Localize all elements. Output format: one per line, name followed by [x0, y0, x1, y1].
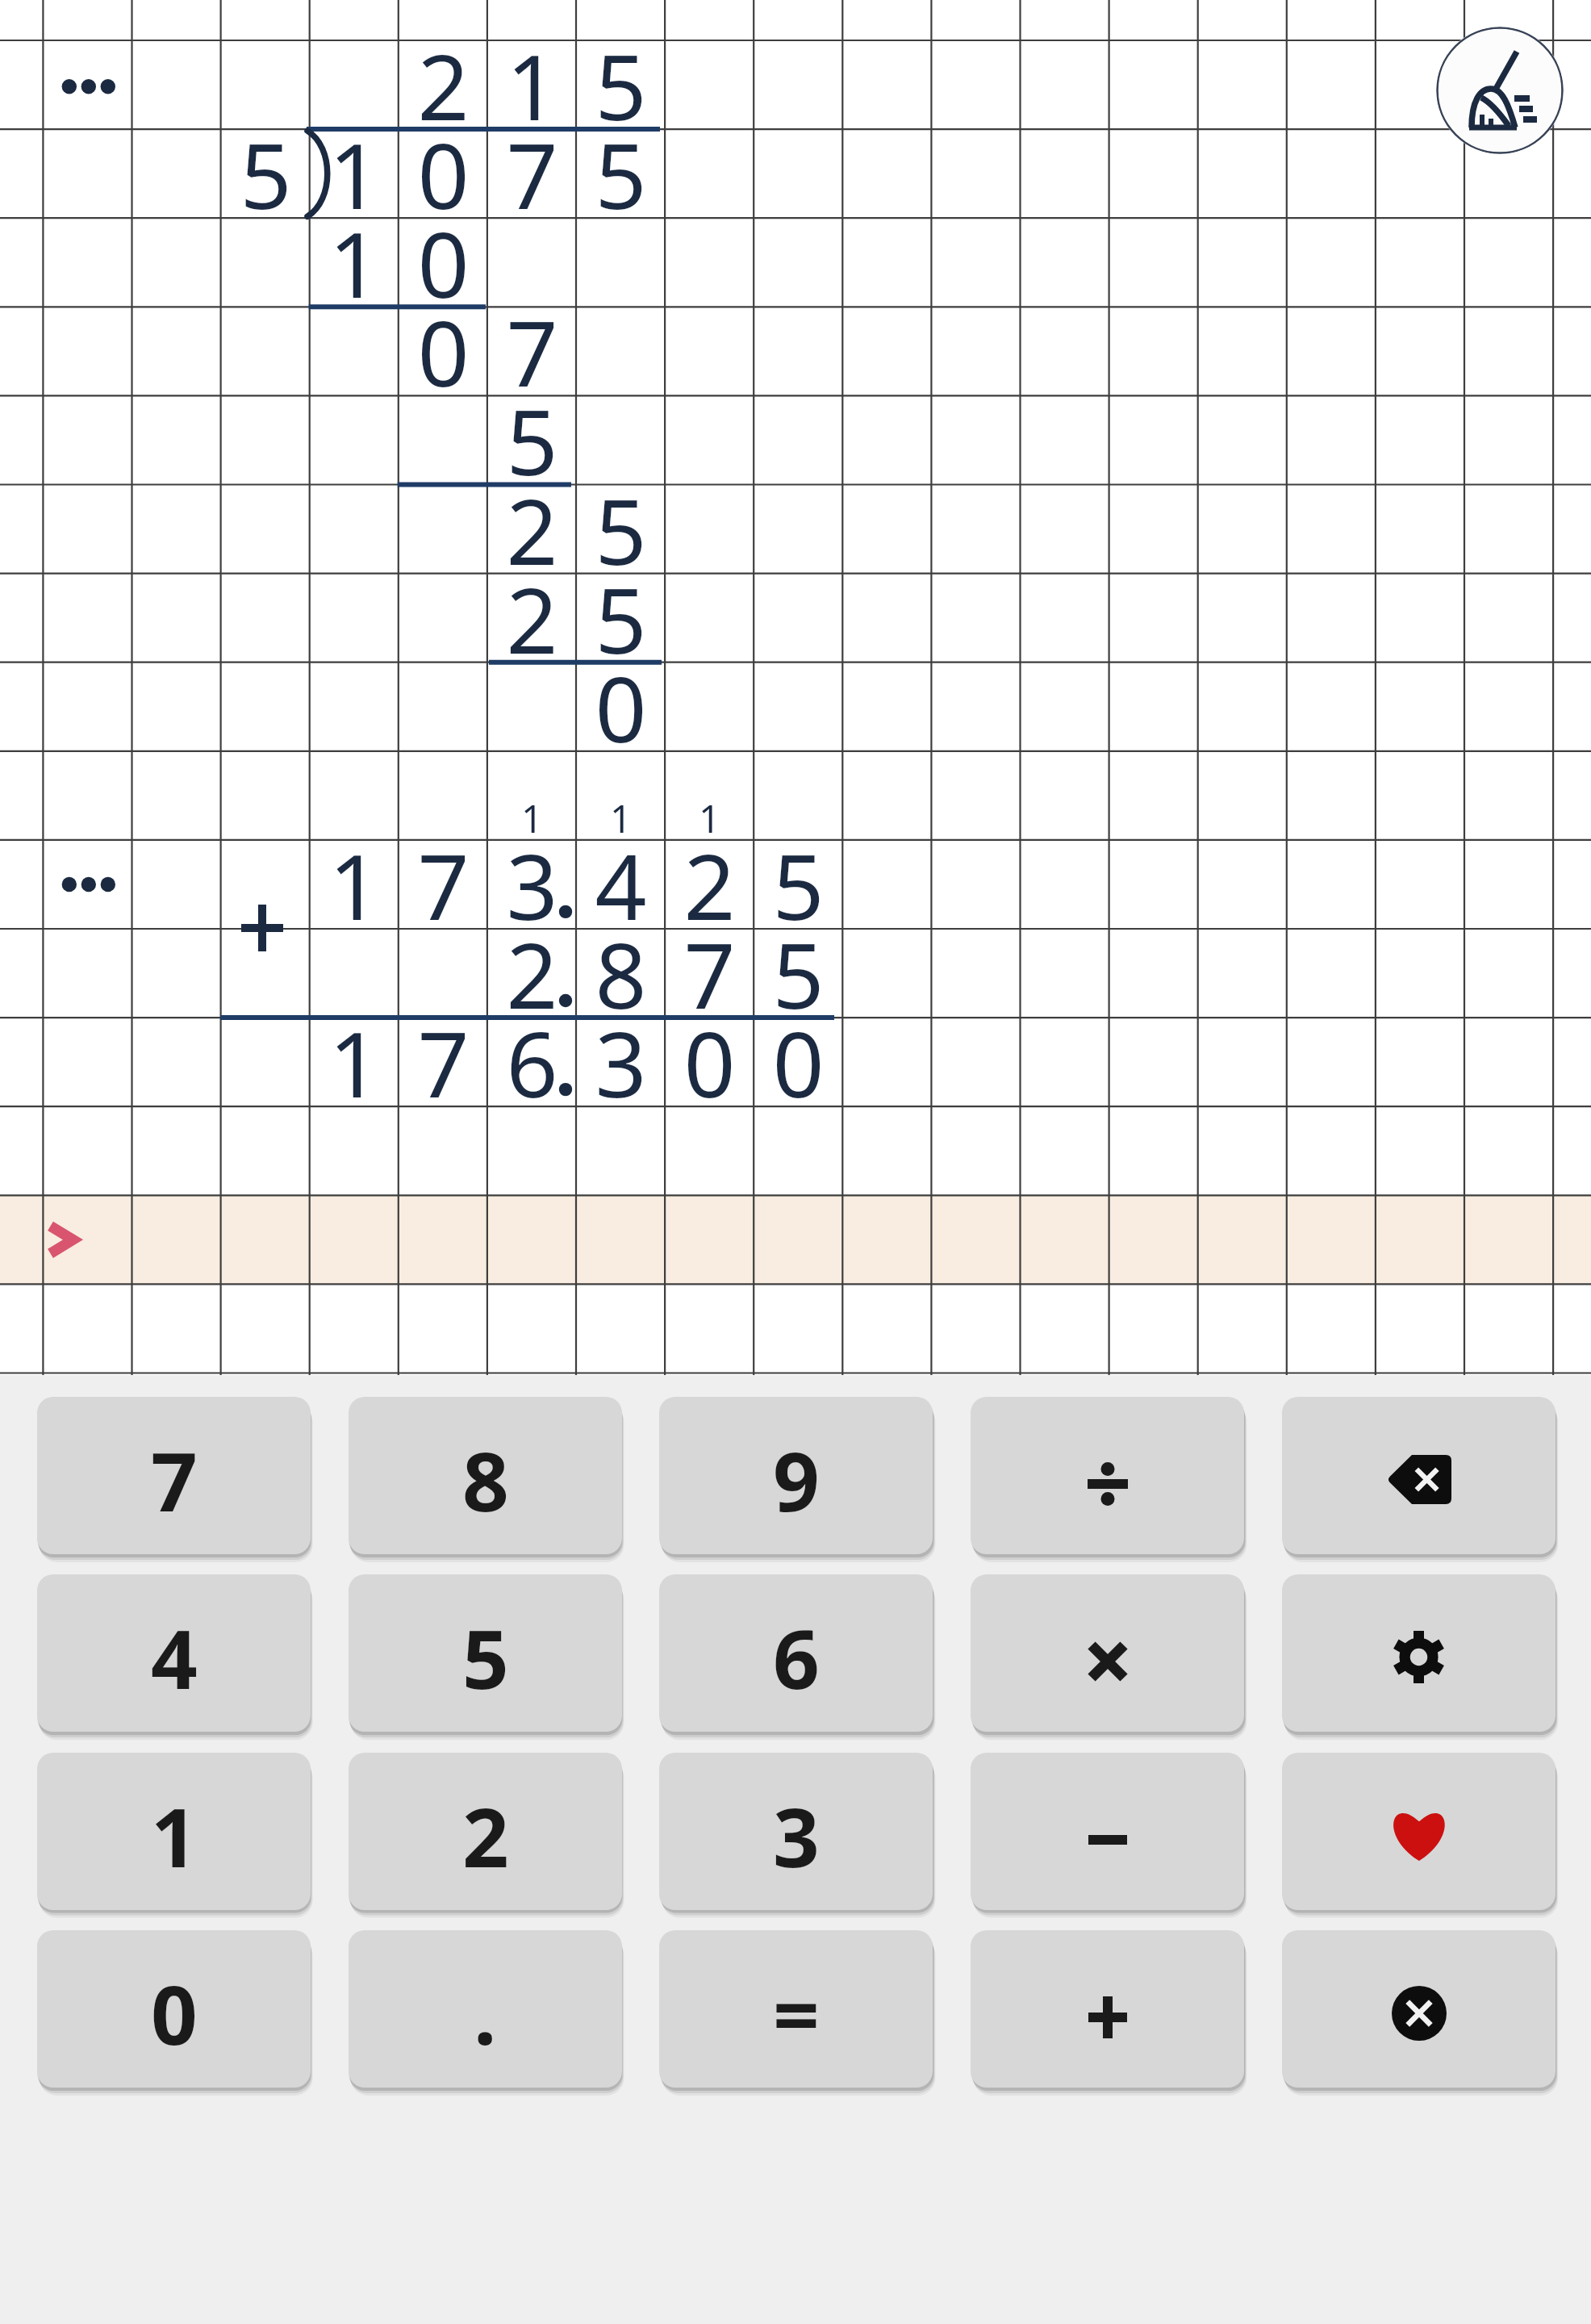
button[interactable]: Backspace — [1282, 1397, 1556, 1554]
staticText: 3 — [773, 1780, 820, 1891]
button[interactable]: 8 — [349, 1397, 622, 1554]
staticText: 5 — [595, 557, 647, 680]
staticText: 0 — [683, 1001, 736, 1124]
staticText: 0 — [417, 112, 470, 236]
staticText: 5 — [595, 23, 647, 147]
other: Backspace — [1387, 1455, 1451, 1504]
staticText: 5 — [506, 378, 558, 502]
staticText: 1 — [506, 23, 558, 147]
staticText: 7 — [683, 912, 736, 1035]
staticText: 1 — [328, 823, 381, 947]
staticText: 2 — [683, 823, 736, 947]
staticText: 1 — [328, 1001, 381, 1124]
staticText: 7 — [417, 823, 470, 947]
staticText: 2 — [506, 468, 558, 591]
button[interactable]: = — [659, 1930, 933, 2088]
staticText: 5 — [595, 468, 647, 591]
staticText: = — [773, 1958, 820, 2069]
staticText: 2 — [417, 23, 470, 147]
button[interactable]: Divide — [971, 1397, 1244, 1554]
button[interactable]: 6 — [659, 1574, 933, 1732]
button[interactable]: Clear — [1282, 1930, 1556, 2088]
staticText: 1 — [699, 792, 720, 844]
staticText: 5 — [240, 112, 292, 236]
button[interactable]: 1 — [37, 1753, 311, 1910]
button[interactable]: 5 — [349, 1574, 622, 1732]
staticText: 1 — [328, 112, 381, 236]
staticText: 0 — [417, 201, 470, 324]
staticText: 6 — [773, 1602, 820, 1713]
staticText: 5 — [772, 823, 825, 947]
staticText: 0 — [151, 1958, 198, 2069]
staticText: 8 — [462, 1424, 509, 1536]
staticText: . — [474, 1958, 497, 2069]
button[interactable]: Add — [971, 1930, 1244, 2088]
staticText: 2 — [506, 557, 558, 680]
other: Favorite — [1391, 1809, 1447, 1861]
staticText: 2 — [506, 912, 558, 1035]
button[interactable]: 7 — [37, 1397, 311, 1554]
staticText: 7 — [151, 1424, 198, 1536]
staticText: 5 — [462, 1602, 509, 1713]
button[interactable]: . — [349, 1930, 622, 2088]
staticText: 3 — [506, 823, 558, 947]
staticText: 0 — [772, 1001, 825, 1124]
staticText: 7 — [417, 1001, 470, 1124]
staticText: 7 — [506, 290, 558, 413]
other: Settings — [1393, 1631, 1445, 1683]
staticText: 1 — [151, 1780, 198, 1891]
staticText: 1 — [610, 792, 632, 844]
other: Multiply — [1079, 1633, 1136, 1690]
button[interactable]: 2 — [349, 1753, 622, 1910]
staticText: 6 — [506, 1001, 558, 1124]
other: Subtract — [1079, 1812, 1136, 1868]
other: Add — [1079, 1989, 1136, 2046]
button[interactable]: Settings — [1282, 1574, 1556, 1732]
staticText: 4 — [595, 823, 647, 947]
staticText: 4 — [151, 1602, 198, 1713]
button[interactable]: Favorite — [1282, 1753, 1556, 1910]
other: Divide — [1079, 1456, 1136, 1512]
staticText: 1 — [521, 792, 543, 844]
staticText: 1 — [328, 201, 381, 324]
staticText: 7 — [506, 112, 558, 236]
button[interactable]: Subtract — [971, 1753, 1244, 1910]
staticText: 0 — [595, 646, 647, 769]
other: Clear — [1392, 1986, 1447, 2041]
button[interactable]: 4 — [37, 1574, 311, 1732]
staticText: 3 — [595, 1001, 647, 1124]
staticText: 5 — [595, 112, 647, 236]
staticText: 2 — [462, 1780, 509, 1891]
staticText: 8 — [595, 912, 647, 1035]
button[interactable]: Clear all — [1436, 27, 1564, 154]
staticText: 9 — [773, 1424, 820, 1536]
button[interactable]: Multiply — [971, 1574, 1244, 1732]
staticText: 0 — [417, 290, 470, 413]
button[interactable]: 9 — [659, 1397, 933, 1554]
button[interactable]: 0 — [37, 1930, 311, 2088]
button[interactable]: 3 — [659, 1753, 933, 1910]
staticText: 5 — [772, 912, 825, 1035]
